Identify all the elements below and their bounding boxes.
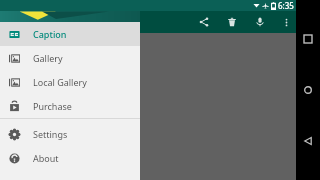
staticText: first night of trail project	[3, 135, 95, 146]
staticText: 00:07	[55, 97, 76, 108]
staticText: 6:35	[278, 0, 294, 11]
button[interactable]: Caption	[0, 22, 140, 46]
staticText: Caption	[33, 28, 67, 40]
button[interactable]: About	[0, 146, 140, 170]
button[interactable]: Local Gallery	[0, 70, 140, 94]
staticText: Purchase	[33, 100, 72, 112]
button[interactable]: Gallery	[0, 46, 140, 70]
staticText: About	[33, 152, 59, 164]
button[interactable]: Settings	[0, 122, 140, 146]
button[interactable]: Recent apps	[296, 27, 320, 51]
button[interactable]: Delete caption	[40, 101, 54, 122]
staticText: Local Gallery	[33, 76, 87, 88]
button[interactable]: first night of trail project	[0, 131, 105, 150]
button[interactable]: Delete	[223, 13, 241, 31]
button[interactable]: Record	[251, 13, 269, 31]
button[interactable]: Home	[296, 78, 320, 102]
button[interactable]: Purchase	[0, 94, 140, 118]
button[interactable]: Share	[195, 13, 213, 31]
button[interactable]: More options	[279, 15, 293, 29]
staticText: Gallery	[33, 52, 63, 64]
button[interactable]: Back	[296, 129, 320, 153]
staticText: Settings	[33, 128, 68, 140]
button[interactable]: Play	[0, 102, 30, 121]
